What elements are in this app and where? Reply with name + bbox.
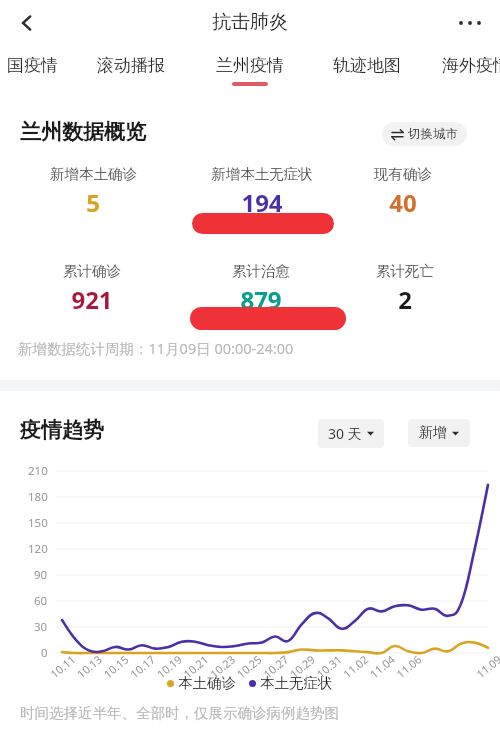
button[interactable]: 累计治愈 [181, 262, 341, 316]
staticText: 兰州数据概览 [20, 119, 146, 145]
button[interactable]: 新增本土确诊 [13, 165, 173, 219]
button[interactable]: 兰州疫情 [204, 45, 296, 95]
button[interactable]: 累计确诊 [12, 262, 172, 316]
button[interactable]: 轨迹地图 [321, 45, 413, 95]
button[interactable]: 30 天 [318, 419, 384, 448]
button[interactable]: 国疫情 [0, 45, 78, 95]
staticText: 新增数据统计周期：11月09日 00:00-24:00 [18, 338, 294, 358]
staticText: 本土确诊 [178, 674, 236, 692]
button[interactable]: More options [450, 3, 490, 43]
staticText: 累计治愈 [232, 262, 290, 280]
staticText: 40 [389, 186, 417, 219]
staticText: 新增 [419, 424, 447, 442]
staticText: 抗击肺炎 [212, 10, 288, 34]
staticText: 5 [86, 186, 100, 219]
staticText: 兰州疫情 [216, 55, 284, 76]
button[interactable]: 切换城市 [382, 122, 467, 146]
button[interactable]: 新增本土无症状 [182, 165, 342, 219]
staticText: 累计死亡 [376, 262, 434, 280]
button[interactable]: 滚动播报 [85, 45, 177, 95]
button[interactable]: 新增 [408, 419, 470, 447]
button[interactable]: 现有确诊 [323, 165, 483, 219]
button[interactable]: Back [8, 4, 46, 42]
staticText: 921 [71, 283, 113, 316]
staticText: 滚动播报 [97, 55, 165, 76]
button[interactable]: 海外疫情 [430, 45, 500, 95]
staticText: 切换城市 [408, 126, 458, 142]
staticText: 国疫情 [7, 55, 58, 76]
staticText: 新增本土无症状 [211, 165, 313, 183]
staticText: 2 [398, 283, 412, 316]
button[interactable]: 累计死亡 [325, 262, 485, 316]
staticText: 现有确诊 [374, 165, 432, 183]
staticText: 194 [241, 186, 283, 219]
staticText: 疫情趋势 [20, 417, 104, 443]
staticText: 879 [240, 283, 282, 316]
button[interactable]: 本土无症状 [249, 674, 333, 692]
staticText: 30 天 [328, 424, 362, 443]
staticText: 轨迹地图 [333, 55, 401, 76]
staticText: 累计确诊 [63, 262, 121, 280]
button[interactable]: 本土确诊 [167, 674, 236, 692]
staticText: 时间选择近半年、全部时，仅展示确诊病例趋势图 [20, 704, 339, 722]
staticText: 新增本土确诊 [50, 165, 137, 183]
staticText: 本土无症状 [260, 674, 333, 692]
staticText: 海外疫情 [442, 55, 500, 76]
